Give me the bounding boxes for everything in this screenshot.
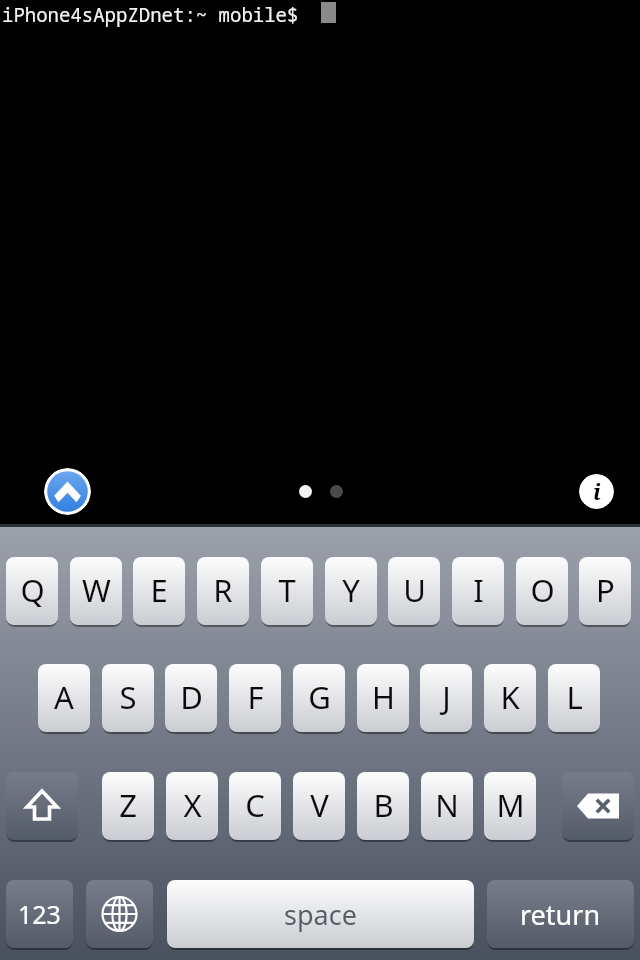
button[interactable]: U xyxy=(388,557,440,625)
staticText: D xyxy=(180,676,203,718)
button[interactable]: G xyxy=(293,664,345,732)
staticText: R xyxy=(213,569,233,611)
button[interactable]: W xyxy=(70,557,122,625)
button[interactable]: K xyxy=(484,664,536,732)
staticText: Y xyxy=(342,569,360,611)
staticText: T xyxy=(278,569,296,611)
staticText: H xyxy=(372,676,395,718)
button[interactable]: Page 2 xyxy=(330,485,343,498)
button[interactable]: H xyxy=(357,664,409,732)
staticText: B xyxy=(373,784,394,826)
staticText: G xyxy=(308,676,331,718)
button[interactable]: O xyxy=(516,557,568,625)
button[interactable]: Backspace xyxy=(562,772,634,840)
staticText: U xyxy=(403,569,426,611)
button[interactable]: N xyxy=(421,772,473,840)
button[interactable]: S xyxy=(102,664,154,732)
staticText: i xyxy=(593,476,601,506)
button[interactable]: P xyxy=(579,557,631,625)
button[interactable]: V xyxy=(293,772,345,840)
staticText: A xyxy=(54,676,74,718)
staticText: N xyxy=(435,784,459,826)
button[interactable]: Z xyxy=(102,772,154,840)
staticText: M xyxy=(496,784,525,826)
staticText: O xyxy=(530,569,555,611)
staticText: C xyxy=(245,784,265,826)
staticText: S xyxy=(119,676,137,718)
staticText: 123 xyxy=(18,897,61,931)
staticText: E xyxy=(150,569,168,611)
button[interactable]: J xyxy=(420,664,472,732)
button[interactable]: Next keyboard xyxy=(86,880,153,948)
button[interactable]: return xyxy=(487,880,634,948)
button[interactable]: E xyxy=(133,557,185,625)
button[interactable]: D xyxy=(165,664,217,732)
staticText: Q xyxy=(20,569,45,611)
staticText: space xyxy=(284,896,357,933)
staticText: I xyxy=(473,569,484,611)
staticText: K xyxy=(500,676,520,718)
button[interactable]: X xyxy=(166,772,218,840)
staticText: F xyxy=(247,676,264,718)
button[interactable]: Y xyxy=(325,557,377,625)
button[interactable]: Hide keyboard xyxy=(44,468,91,515)
button[interactable]: Shift xyxy=(6,772,78,840)
button[interactable]: L xyxy=(548,664,600,732)
button[interactable]: Info xyxy=(579,474,614,509)
button[interactable]: R xyxy=(197,557,249,625)
staticText: W xyxy=(82,569,111,611)
staticText: iPhone4sAppZDnet:~ mobile$ xyxy=(2,2,299,28)
button[interactable]: T xyxy=(261,557,313,625)
button[interactable]: Page 1 xyxy=(299,485,312,498)
staticText: P xyxy=(596,569,615,611)
staticText: Z xyxy=(119,784,137,826)
button[interactable]: 123 xyxy=(6,880,73,948)
button[interactable]: A xyxy=(38,664,90,732)
button[interactable]: C xyxy=(229,772,281,840)
button[interactable]: Q xyxy=(6,557,58,625)
staticText: return xyxy=(520,896,601,933)
button[interactable]: B xyxy=(357,772,409,840)
button[interactable]: I xyxy=(452,557,504,625)
staticText: X xyxy=(183,784,202,826)
button[interactable]: M xyxy=(484,772,536,840)
button[interactable]: space xyxy=(167,880,474,948)
staticText: V xyxy=(310,784,329,826)
staticText: L xyxy=(566,676,583,718)
button[interactable]: F xyxy=(229,664,281,732)
staticText: J xyxy=(442,676,451,718)
